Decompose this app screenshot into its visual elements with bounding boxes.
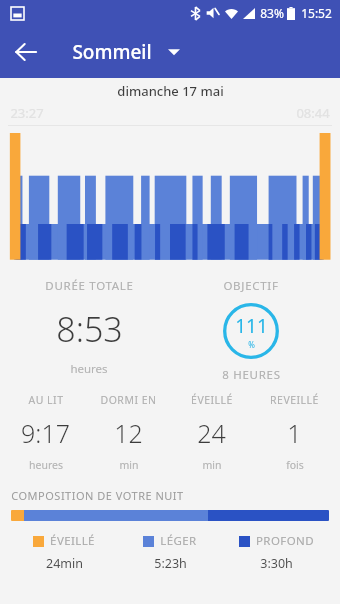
staticText: 24	[197, 416, 226, 450]
staticText: LÉGER	[160, 533, 197, 549]
staticText: 23:27	[10, 104, 44, 122]
button[interactable]: PROFOND	[223, 533, 329, 572]
button[interactable]: Sommeil	[72, 39, 180, 65]
staticText: ÉVEILLÉ	[191, 393, 233, 407]
staticText: 83%	[260, 5, 284, 21]
staticText: REVEILLÉ	[270, 393, 319, 407]
staticText: COMPOSITION DE VOTRE NUIT	[11, 488, 184, 503]
staticText: Sommeil	[72, 39, 152, 65]
staticText: 8 HEURES	[222, 367, 281, 383]
staticText: dimanche 17 mai	[117, 82, 224, 100]
staticText: 12	[114, 416, 143, 450]
staticText: 15:52	[301, 5, 332, 21]
staticText: fois	[286, 458, 304, 472]
staticText: 9:17	[21, 416, 70, 450]
staticText: 8:53	[56, 306, 123, 352]
staticText: AU LIT	[28, 393, 64, 407]
staticText: min	[202, 458, 222, 472]
staticText: ÉVEILLÉ	[50, 533, 95, 549]
button[interactable]: Back	[0, 26, 52, 78]
staticText: heures	[29, 458, 63, 472]
button[interactable]: LÉGER	[117, 533, 223, 572]
staticText: 08:44	[296, 104, 330, 122]
staticText: min	[119, 458, 139, 472]
staticText: 3:30h	[260, 555, 293, 572]
staticText: 5:23h	[154, 555, 187, 572]
staticText: 111	[235, 313, 268, 339]
staticText: 1	[287, 416, 302, 450]
staticText: 24min	[46, 555, 83, 572]
staticText: heures	[70, 361, 108, 377]
staticText: DORMI EN	[100, 393, 157, 407]
staticText: DURÉE TOTALE	[45, 278, 134, 294]
staticText: PROFOND	[256, 533, 314, 549]
staticText: OBJECTIF	[223, 278, 279, 294]
staticText: %	[248, 339, 255, 350]
button[interactable]: ÉVEILLÉ	[11, 533, 117, 572]
